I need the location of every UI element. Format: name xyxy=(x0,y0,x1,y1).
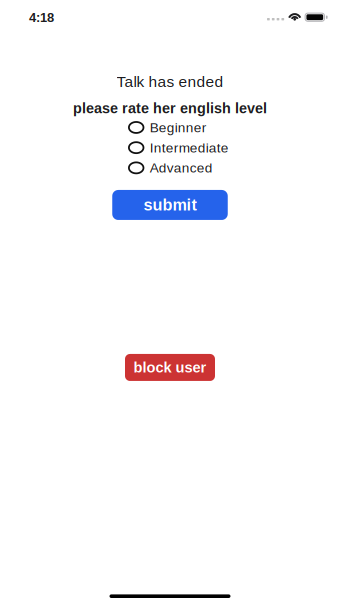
staticText: Advanced xyxy=(150,160,213,175)
button[interactable]: Advanced xyxy=(128,158,232,178)
staticText: Talk has ended xyxy=(116,73,223,90)
button[interactable]: block user xyxy=(125,354,215,381)
staticText: submit xyxy=(143,196,196,214)
button[interactable]: submit xyxy=(112,190,228,220)
staticText: please rate her english level xyxy=(73,100,267,116)
button[interactable]: Intermediate xyxy=(128,138,232,158)
staticText: Intermediate xyxy=(150,140,229,155)
staticText: block user xyxy=(133,359,206,376)
staticText: Beginner xyxy=(150,120,207,135)
button[interactable]: Beginner xyxy=(128,117,232,138)
staticText: 4:18 xyxy=(29,10,54,25)
